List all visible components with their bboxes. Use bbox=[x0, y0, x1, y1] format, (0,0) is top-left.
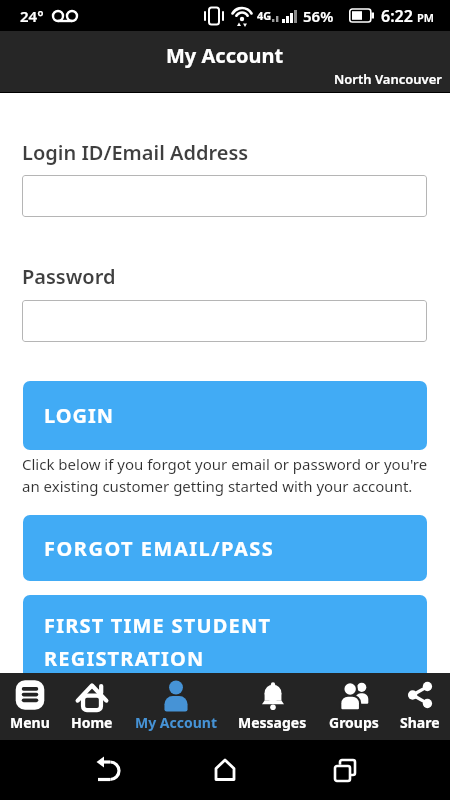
button[interactable] bbox=[93, 753, 127, 787]
staticText: LOGIN bbox=[44, 402, 115, 429]
staticText: Click below if you forgot your email or … bbox=[22, 454, 428, 497]
button[interactable]: LOGIN bbox=[23, 381, 427, 450]
button[interactable] bbox=[22, 300, 427, 342]
button[interactable]: FIRST TIME STUDENT REGISTRATION bbox=[23, 595, 427, 695]
staticText: Groups bbox=[329, 713, 379, 732]
staticText: 24° bbox=[20, 6, 44, 26]
staticText: Password bbox=[22, 263, 116, 290]
staticText: FIRST TIME STUDENT REGISTRATION bbox=[44, 612, 272, 672]
button[interactable]: Groups bbox=[329, 673, 379, 732]
staticText: Login ID/Email Address bbox=[22, 139, 249, 166]
button[interactable]: FORGOT EMAIL/PASS bbox=[23, 515, 427, 581]
button[interactable]: Share bbox=[400, 673, 440, 732]
button[interactable]: Messages bbox=[238, 673, 307, 732]
staticText: FORGOT EMAIL/PASS bbox=[44, 535, 275, 562]
staticText: My Account bbox=[135, 713, 217, 732]
staticText: Share bbox=[400, 713, 440, 732]
staticText: 6:22 PM bbox=[381, 5, 435, 27]
staticText: North Vancouver bbox=[334, 70, 442, 88]
button[interactable] bbox=[22, 175, 427, 217]
button[interactable] bbox=[328, 753, 362, 787]
staticText: 4G bbox=[257, 8, 272, 23]
staticText: 56% bbox=[303, 6, 334, 26]
staticText: Messages bbox=[238, 713, 307, 732]
button[interactable] bbox=[208, 753, 242, 787]
staticText: Menu bbox=[10, 713, 50, 732]
button[interactable]: Menu bbox=[10, 673, 50, 732]
staticText: My Account bbox=[166, 42, 284, 69]
staticText: Home bbox=[71, 713, 113, 732]
button[interactable]: My Account bbox=[135, 673, 217, 732]
button[interactable]: Home bbox=[71, 673, 113, 732]
